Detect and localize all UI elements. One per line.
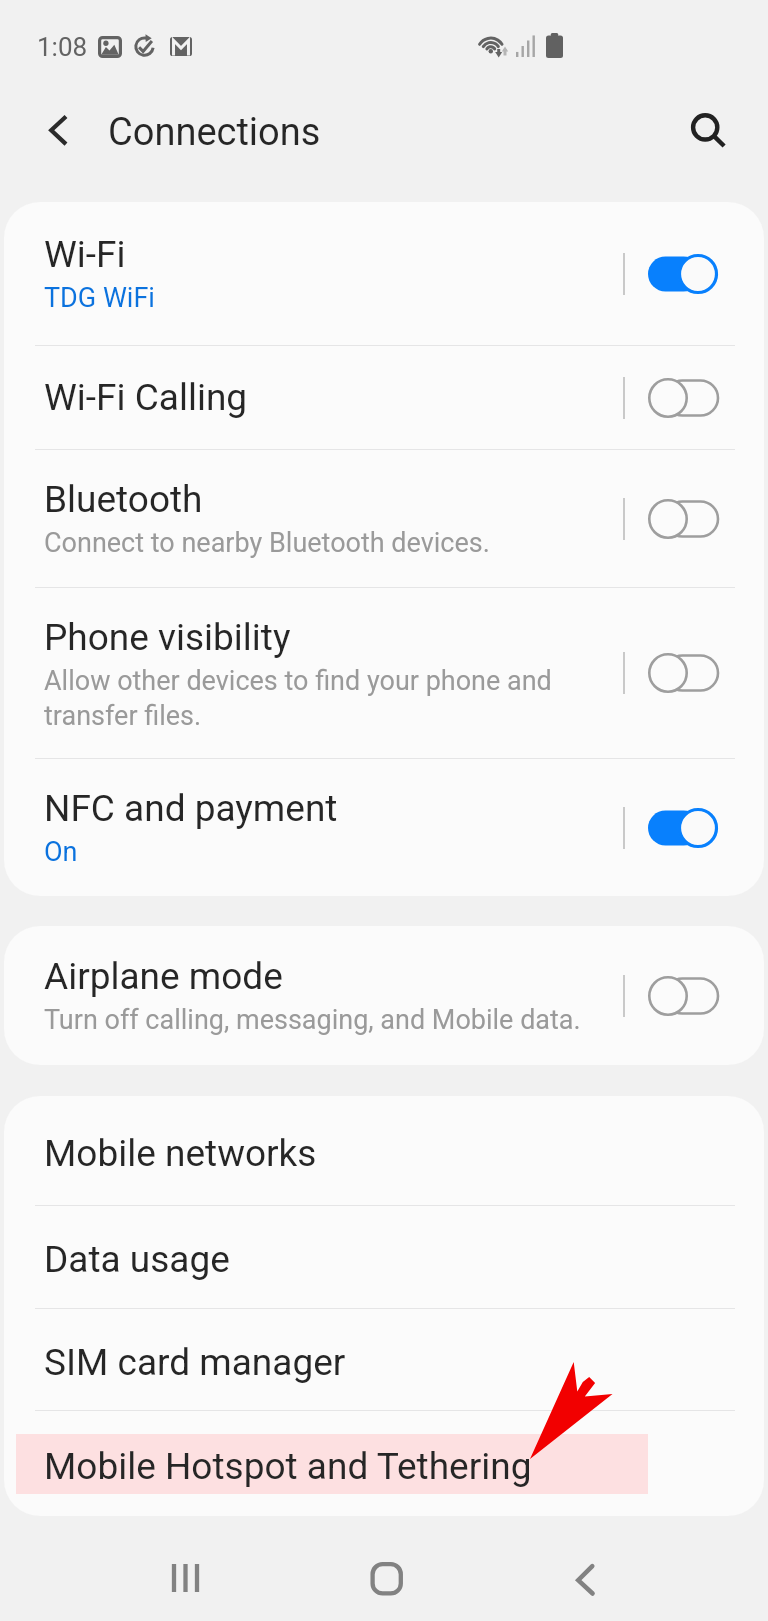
staticText: Bluetooth (44, 478, 203, 521)
staticText: NFC and payment (44, 787, 338, 830)
staticText: Mobile networks (44, 1132, 317, 1175)
staticText: TDG WiFi (44, 282, 155, 314)
staticText: Data usage (44, 1238, 230, 1281)
button[interactable]: Search (671, 94, 739, 162)
staticText: 1:08 (37, 32, 88, 62)
button[interactable]: Off (648, 498, 718, 540)
button[interactable]: Off (648, 652, 718, 694)
button[interactable]: On (648, 807, 718, 849)
button[interactable]: Phone visibility (4, 588, 764, 758)
staticText: Connect to nearby Bluetooth devices. (44, 527, 490, 559)
staticText: Wi-Fi (44, 233, 126, 276)
staticText: On (44, 836, 78, 868)
staticText: Wi-Fi Calling (44, 376, 248, 419)
button[interactable]: Home (331, 1529, 441, 1621)
button[interactable]: Off (648, 377, 718, 419)
button[interactable]: Bluetooth (4, 450, 764, 587)
button[interactable]: NFC and payment (4, 759, 764, 896)
staticText: Turn off calling, messaging, and Mobile … (44, 1004, 581, 1036)
button[interactable]: Mobile Hotspot and Tethering (4, 1411, 764, 1516)
button[interactable]: Airplane mode (4, 926, 764, 1065)
button[interactable]: Wi-Fi (4, 202, 764, 345)
button[interactable]: Mobile networks (4, 1096, 764, 1205)
button[interactable]: Data usage (4, 1206, 764, 1308)
staticText: Airplane mode (44, 955, 283, 998)
button[interactable]: Wi-Fi Calling (4, 346, 764, 449)
button[interactable]: Navigate up (24, 100, 94, 176)
button[interactable]: SIM card manager (4, 1309, 764, 1410)
staticText: Allow other devices to find your phone a… (44, 665, 605, 731)
button[interactable]: Back (531, 1529, 641, 1621)
staticText: Mobile Hotspot and Tethering (44, 1445, 532, 1488)
button[interactable]: Recent apps (131, 1529, 241, 1621)
staticText: Phone visibility (44, 616, 291, 659)
button[interactable]: On (648, 253, 718, 295)
button[interactable]: Off (648, 975, 718, 1017)
staticText: Connections (108, 110, 321, 155)
staticText: SIM card manager (44, 1341, 346, 1384)
